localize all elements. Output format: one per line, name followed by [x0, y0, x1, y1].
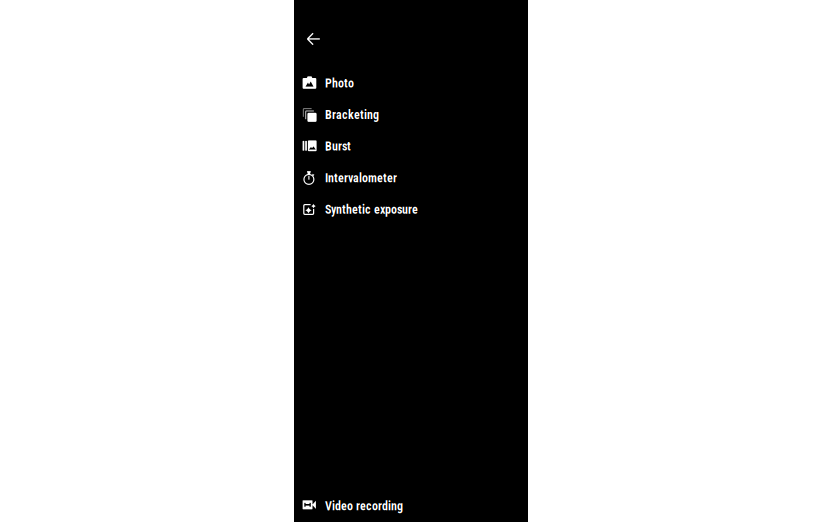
staticText: Bracketing — [325, 108, 379, 122]
button[interactable]: Bracketing — [294, 99, 528, 131]
staticText: Synthetic exposure — [325, 203, 418, 217]
staticText: Video recording — [325, 499, 403, 513]
button[interactable]: Photo — [294, 67, 528, 99]
button[interactable]: Synthetic exposure — [294, 194, 528, 225]
staticText: Burst — [325, 139, 351, 154]
button[interactable]: Burst — [294, 131, 528, 162]
button[interactable]: Back — [294, 17, 528, 61]
button[interactable]: Video recording — [294, 490, 528, 522]
staticText: Photo — [325, 76, 354, 90]
staticText: Intervalometer — [325, 171, 397, 185]
button[interactable]: Intervalometer — [294, 162, 528, 194]
